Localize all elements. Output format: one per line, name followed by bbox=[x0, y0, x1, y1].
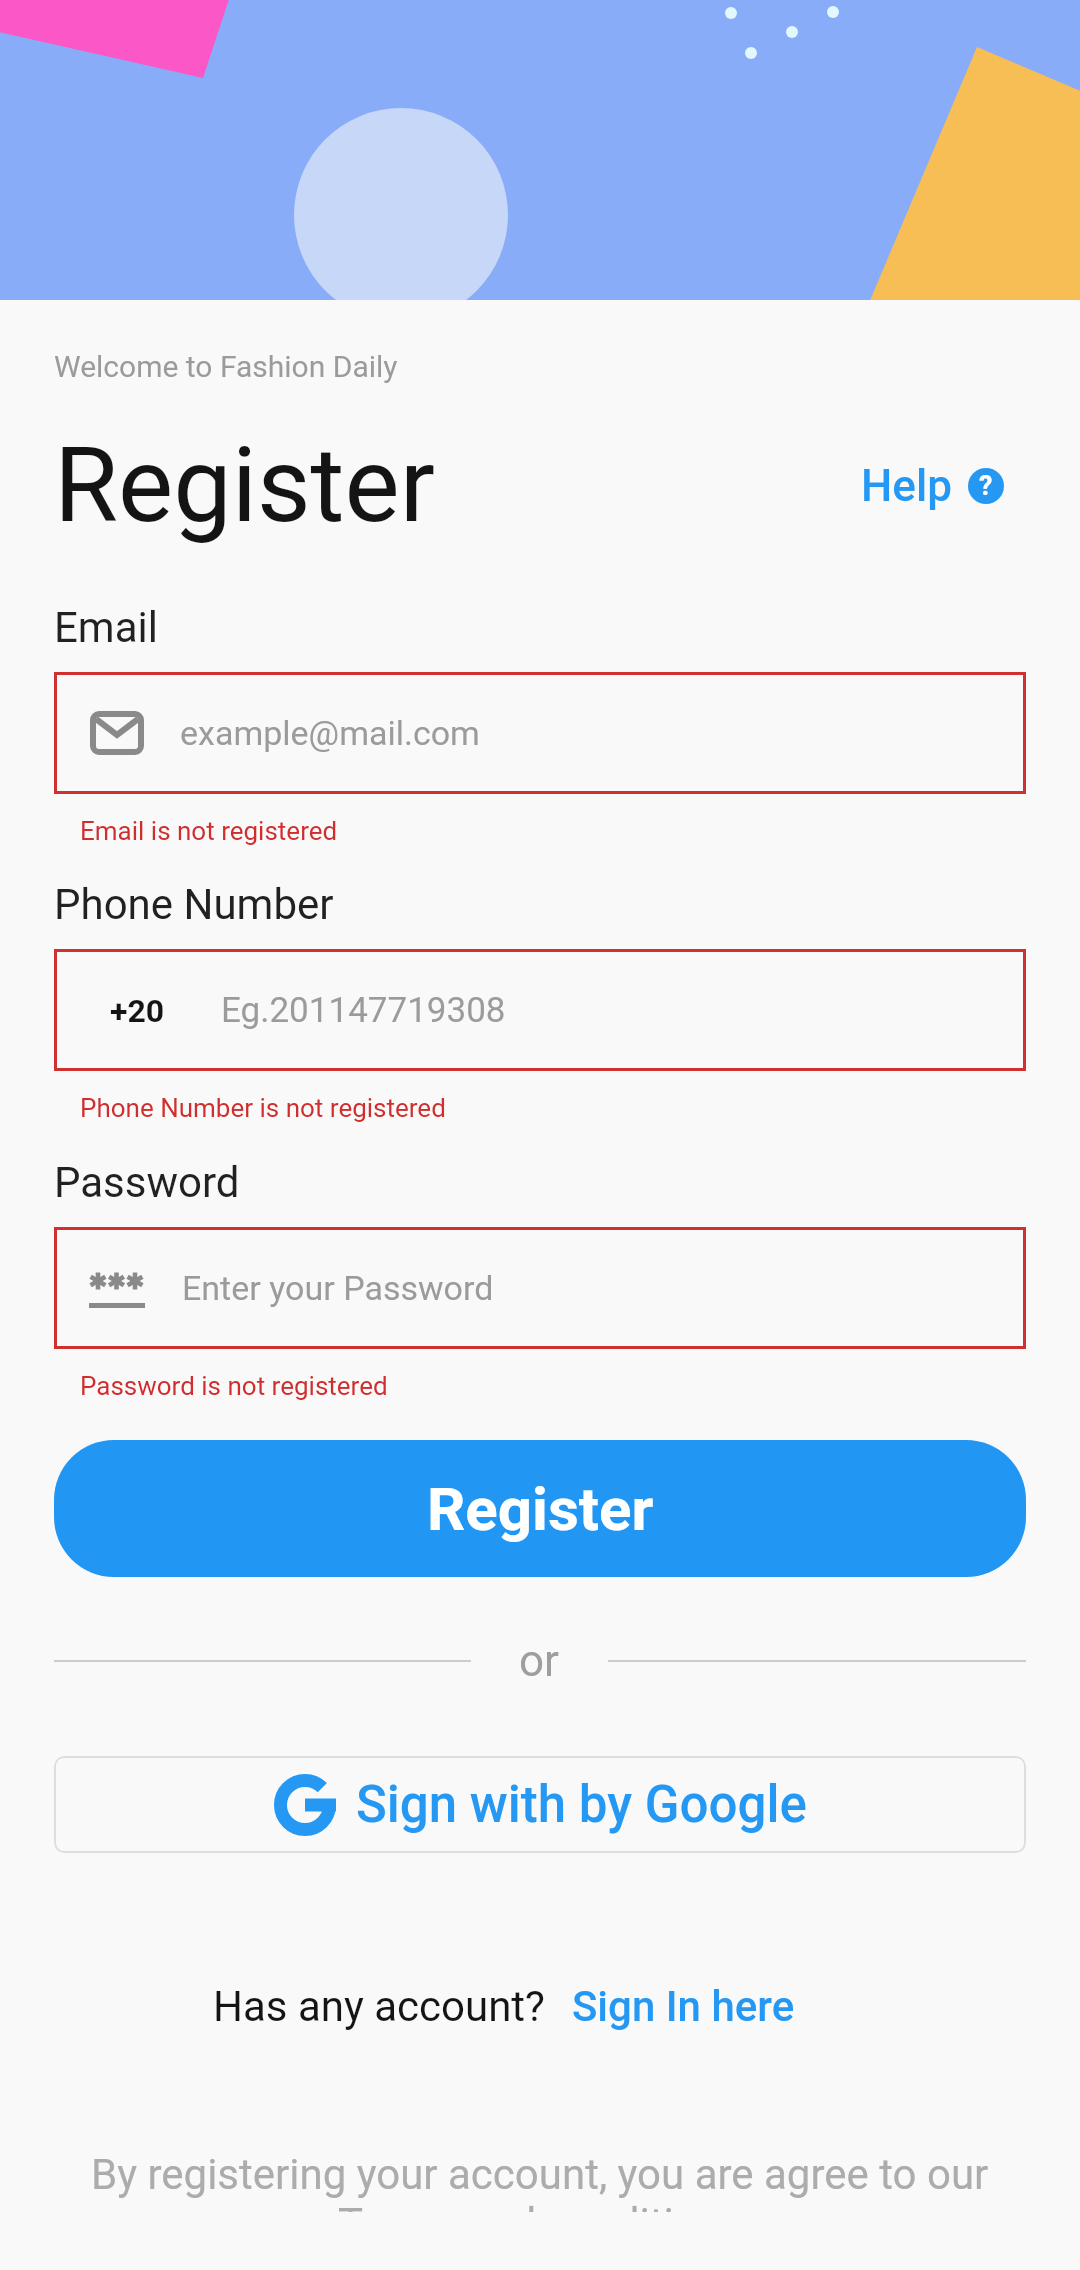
staticText: By registering your account, you are agr… bbox=[91, 2150, 989, 2199]
button[interactable]: Sign with by Google bbox=[54, 1756, 1026, 1853]
staticText: Phone Number is not registered bbox=[80, 1093, 446, 1123]
button[interactable]: +20 bbox=[54, 949, 1026, 1071]
staticText: Email is not registered bbox=[80, 816, 338, 846]
staticText: Sign with by Google bbox=[356, 1775, 807, 1835]
staticText: Terms and conditions bbox=[338, 2199, 743, 2212]
staticText: Email bbox=[54, 603, 158, 652]
button[interactable]: Enter your Password bbox=[54, 1227, 1026, 1349]
staticText: Has any account? bbox=[213, 1982, 545, 2031]
staticText: +20 bbox=[110, 992, 165, 1030]
staticText: Register bbox=[427, 1474, 654, 1544]
button[interactable]: Register bbox=[54, 1440, 1026, 1577]
button[interactable]: Sign In here bbox=[572, 1982, 795, 2031]
staticText: Welcome to Fashion Daily bbox=[54, 349, 398, 384]
staticText: ? bbox=[979, 470, 993, 502]
staticText: Help bbox=[861, 460, 952, 512]
staticText: Register bbox=[54, 425, 436, 547]
staticText: Password is not registered bbox=[80, 1371, 388, 1401]
staticText: example@mail.com bbox=[180, 713, 480, 753]
staticText: Password bbox=[54, 1158, 240, 1207]
staticText: Enter your Password bbox=[182, 1268, 494, 1308]
staticText: or bbox=[519, 1635, 560, 1687]
staticText: Eg.201147719308 bbox=[221, 990, 506, 1031]
button[interactable]: Help bbox=[861, 460, 1004, 512]
staticText: Phone Number bbox=[54, 880, 334, 929]
button[interactable]: example@mail.com bbox=[54, 672, 1026, 794]
